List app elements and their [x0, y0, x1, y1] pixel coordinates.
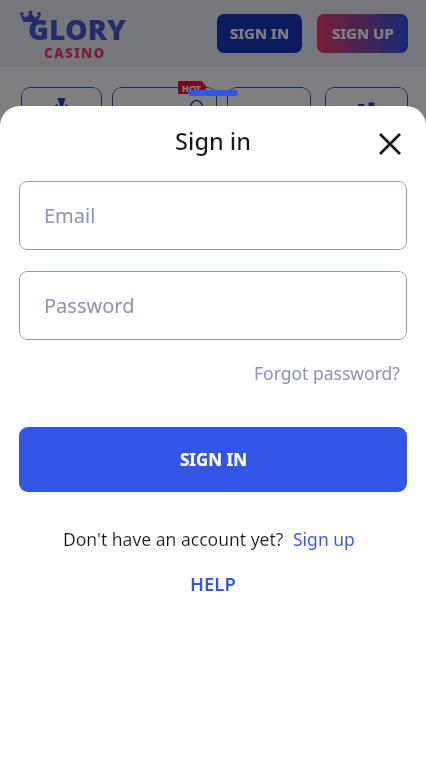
- button[interactable]: Email: [19, 181, 407, 250]
- staticText: SIGN UP: [332, 23, 394, 43]
- staticText: Sign up: [293, 527, 355, 551]
- staticText: Password: [44, 292, 135, 319]
- staticText: Don't have an account yet?: [63, 527, 284, 551]
- button[interactable]: [112, 87, 217, 157]
- button[interactable]: [21, 87, 102, 157]
- staticText: Sign in: [0, 125, 426, 157]
- button[interactable]: [325, 87, 408, 157]
- staticText: CASINO: [44, 44, 106, 62]
- button[interactable]: HELP: [190, 571, 236, 596]
- staticText: Email: [44, 202, 96, 229]
- button[interactable]: SIGN UP: [317, 14, 408, 53]
- button[interactable]: Forgot password?: [0, 361, 400, 385]
- staticText: SIGN IN: [180, 448, 247, 471]
- button[interactable]: Sign up: [293, 527, 355, 551]
- staticText: HOT: [182, 82, 201, 94]
- button[interactable]: [227, 87, 311, 157]
- button[interactable]: SIGN IN: [19, 427, 407, 492]
- staticText: HELP: [190, 571, 236, 596]
- staticText: SIGN IN: [230, 23, 290, 43]
- button[interactable]: SIGN IN: [217, 14, 302, 53]
- staticText: Forgot password?: [254, 361, 400, 385]
- staticText: GLORY: [28, 10, 127, 49]
- button[interactable]: Password: [19, 271, 407, 340]
- button[interactable]: Close: [367, 121, 412, 166]
